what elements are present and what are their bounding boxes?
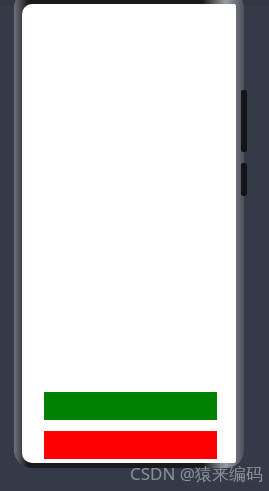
staticText: CSDN @猿来编码 xyxy=(129,462,263,485)
other: Power button xyxy=(241,163,247,196)
other: Volume buttons xyxy=(241,90,247,152)
